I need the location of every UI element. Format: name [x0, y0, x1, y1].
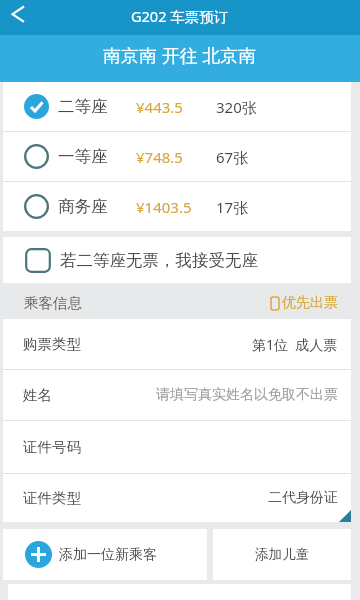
staticText: 二代身份证	[268, 489, 338, 507]
staticText: 商务座	[58, 196, 108, 217]
staticText: 乘客信息	[24, 294, 82, 312]
staticText: 320张	[216, 97, 257, 117]
staticText: 17张	[216, 197, 249, 217]
staticText: 二等座	[58, 96, 108, 117]
staticText: 添加儿童	[255, 546, 309, 563]
staticText: 一等座	[58, 146, 108, 167]
button[interactable]: 添加一位新乘客	[3, 529, 207, 580]
button[interactable]: 若二等座无票，我接受无座	[3, 237, 351, 283]
button[interactable]: 购票类型	[3, 319, 351, 369]
button[interactable]: 商务座	[3, 182, 351, 231]
staticText: 姓名	[23, 386, 52, 404]
staticText: 购票类型	[23, 335, 81, 353]
button[interactable]: 姓名	[3, 370, 351, 420]
staticText: 添加一位新乘客	[59, 546, 157, 564]
staticText: 优先出票	[282, 294, 338, 312]
staticText: 若二等座无票，我接受无座	[60, 250, 258, 271]
button[interactable]: 一等座	[3, 132, 351, 181]
button[interactable]: 添加儿童	[213, 529, 351, 580]
staticText: 第1位 成人票	[252, 335, 338, 354]
staticText: ¥748.5	[136, 147, 183, 167]
button[interactable]: 二等座	[3, 82, 351, 131]
staticText: 请填写真实姓名以免取不出票	[156, 386, 338, 404]
staticText: G202 车票预订	[131, 6, 229, 26]
staticText: ¥443.5	[136, 97, 183, 117]
staticText: 证件类型	[23, 489, 81, 507]
button[interactable]: Back	[0, 0, 40, 30]
staticText: 南京南 开往 北京南	[103, 43, 257, 68]
staticText: 证件号码	[23, 438, 81, 456]
staticText: 67张	[216, 147, 249, 167]
button[interactable]: 证件类型	[3, 474, 351, 522]
button[interactable]: 优先出票	[263, 294, 346, 312]
button[interactable]: 证件号码	[3, 421, 351, 473]
staticText: ¥1403.5	[136, 197, 192, 217]
